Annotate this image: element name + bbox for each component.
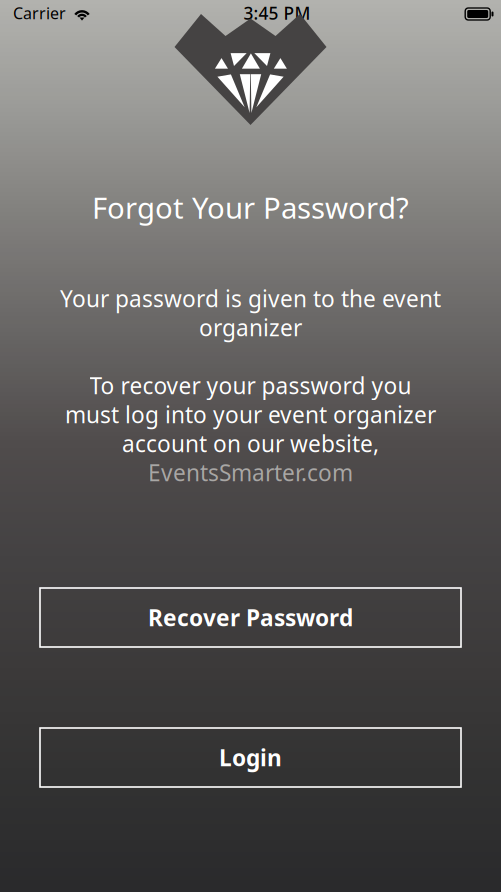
staticText: Forgot Your Password? (92, 188, 409, 227)
staticText: 3:45 PM (243, 1, 310, 25)
staticText: EventsSmarter.com (148, 457, 353, 487)
button[interactable]: Recover Password (40, 588, 461, 647)
button[interactable]: Login (40, 728, 461, 787)
staticText: Recover Password (148, 602, 353, 632)
staticText: To recover your password you (89, 370, 411, 400)
staticText: organizer (199, 312, 302, 342)
staticText: account on our website, (122, 428, 379, 458)
staticText: Login (219, 742, 282, 772)
staticText: must log into your event organizer (65, 399, 436, 429)
staticText: Carrier (13, 2, 66, 24)
staticText: Your password is given to the event (60, 283, 441, 313)
